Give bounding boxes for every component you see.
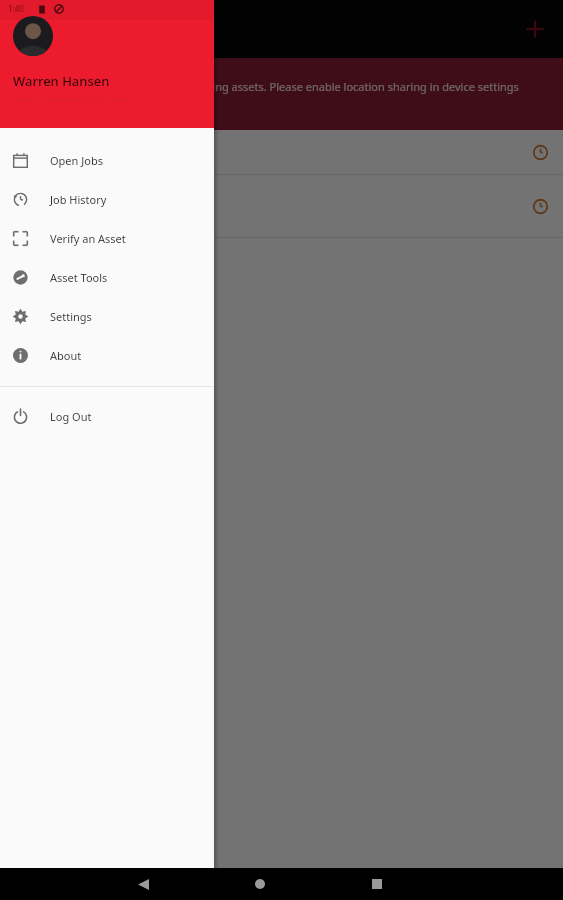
staticText: Open Jobs [50,153,103,168]
staticText: Asset Tools [50,270,108,285]
staticText: Verify an Asset [50,231,126,246]
staticText: warren.hansen@mail.com [13,93,130,106]
button[interactable]: Job History [0,180,214,219]
staticText: Settings [50,309,92,324]
button[interactable]: Verify an Asset [0,219,214,258]
button[interactable]: Recent apps [357,868,397,900]
staticText: About [50,348,82,363]
other: Pending [529,141,551,163]
button[interactable]: Pending [0,175,563,237]
staticText: Warren Hansen [13,72,110,90]
button[interactable]: Profile photo [13,16,53,56]
staticText: 1:40 [8,3,24,14]
button[interactable]: Add [513,7,557,51]
button[interactable]: Pending [0,130,563,174]
button[interactable]: Log Out [0,397,214,436]
button[interactable]: Back [123,868,163,900]
button[interactable]: Home [240,868,280,900]
other: Pending [529,195,551,217]
button[interactable]: Asset Tools [0,258,214,297]
button[interactable]: Settings [0,297,214,336]
staticText: Log Out [50,409,92,424]
button[interactable]: About [0,336,214,375]
staticText: Job History [50,192,107,207]
staticText: Location access is required for inspecti… [16,79,547,109]
button[interactable]: Location access is required for inspecti… [0,58,563,130]
button[interactable] [0,0,563,868]
button[interactable]: Open Jobs [0,141,214,180]
